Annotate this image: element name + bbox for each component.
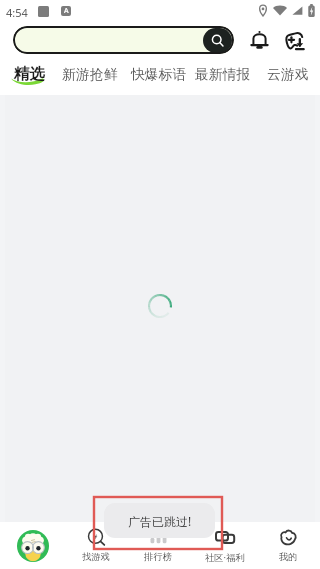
button[interactable] <box>13 26 234 54</box>
button[interactable]: 我的 <box>257 522 319 569</box>
staticText: 云游戏 <box>267 66 309 83</box>
button[interactable]: 云游戏 <box>262 58 314 95</box>
staticText: 新游抢鲜 <box>62 66 118 83</box>
button[interactable]: 排行榜 <box>127 522 189 569</box>
button[interactable]: 社区·福利 <box>194 522 256 569</box>
button[interactable]: 最新情报 <box>190 58 256 95</box>
staticText: 排行榜 <box>144 551 172 563</box>
staticText: 我的 <box>279 551 298 563</box>
staticText: 广告已跳过! <box>128 513 192 529</box>
button[interactable]: 找游戏 <box>65 522 127 569</box>
staticText: 社区·福利 <box>205 551 245 564</box>
staticText: 快爆标语 <box>131 66 187 83</box>
button[interactable]: 精选 <box>8 58 50 95</box>
staticText: A <box>64 6 69 16</box>
button[interactable]: Downloads <box>282 26 310 54</box>
button[interactable]: Profile <box>9 522 57 569</box>
staticText: 精选 <box>14 64 45 84</box>
staticText: 找游戏 <box>82 551 110 563</box>
button[interactable]: 快爆标语 <box>126 58 192 95</box>
button[interactable]: Notifications <box>245 26 273 54</box>
staticText: 最新情报 <box>195 66 251 83</box>
staticText: 4:54 <box>6 5 28 20</box>
button[interactable]: 新游抢鲜 <box>57 58 123 95</box>
